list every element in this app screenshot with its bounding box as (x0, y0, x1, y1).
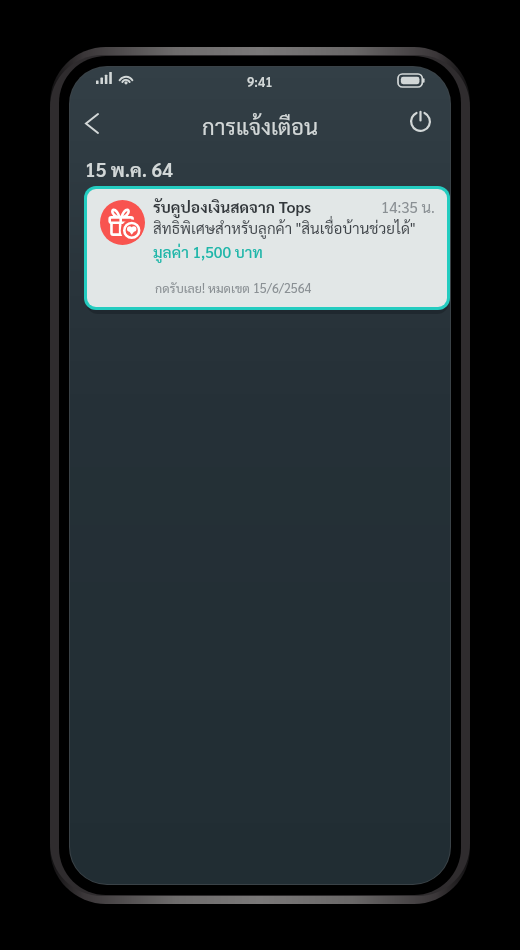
staticText: สิทธิพิเศษสำหรับลูกค้า "สินเชื่อบ้านช่วย… (153, 218, 416, 238)
staticText: รับคูปองเงินสดจาก Tops (153, 196, 312, 216)
staticText: 9:41 (247, 73, 273, 90)
staticText: กดรับเลย! หมดเขต 15/6/2564 (155, 280, 312, 296)
staticText: การแจ้งเตือน (202, 112, 319, 141)
button[interactable]: Back (70, 101, 114, 145)
staticText: 14:35 น. (381, 197, 435, 216)
staticText: มูลค่า 1,500 บาท (153, 241, 263, 261)
button[interactable]: รับคูปองเงินสดจาก Tops (84, 186, 450, 310)
button[interactable]: Power (398, 99, 442, 143)
staticText: 15 พ.ค. 64 (85, 157, 173, 182)
